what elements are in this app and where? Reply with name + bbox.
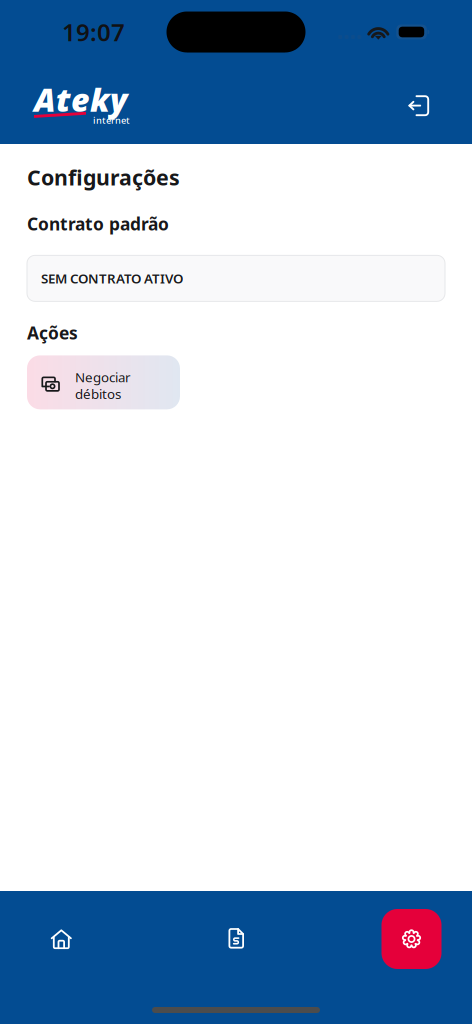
staticText: Negociar débitos [75,368,131,403]
button[interactable]: Início [25,903,97,975]
staticText: Contrato padrão [27,212,169,235]
button[interactable]: Configurações [381,909,441,969]
button[interactable]: Sair [396,83,442,129]
staticText: Ateky [34,78,127,120]
button[interactable]: Faturas [200,902,272,974]
button[interactable]: Negociar débitos [27,355,180,409]
staticText: SEM CONTRATO ATIVO [41,269,183,287]
staticText: Configurações [27,163,180,191]
staticText: 19:07 [62,16,125,48]
staticText: Ações [27,321,78,344]
staticText: internet [93,114,130,126]
